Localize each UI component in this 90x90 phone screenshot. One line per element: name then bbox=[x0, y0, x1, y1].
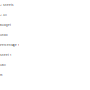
staticText: Sheet 1 bbox=[0, 53, 11, 57]
staticText: ABC bbox=[0, 63, 6, 67]
staticText: < All bbox=[0, 13, 7, 17]
staticText: Budget bbox=[0, 23, 11, 27]
staticText: m bbox=[0, 73, 2, 77]
staticText: < Sheets bbox=[0, 3, 13, 7]
staticText: Percentage 1 bbox=[0, 43, 19, 47]
staticText: Undo bbox=[0, 33, 8, 37]
